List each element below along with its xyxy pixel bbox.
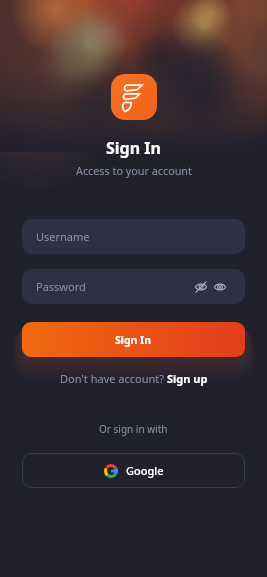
button[interactable]: Hide password (195, 281, 207, 293)
staticText: Password (36, 279, 86, 294)
staticText: Don't have account? (60, 371, 167, 386)
staticText: Sign In (106, 137, 161, 159)
button[interactable]: Password (22, 269, 245, 304)
staticText: Sign In (115, 333, 152, 347)
button[interactable]: Google (22, 453, 245, 488)
staticText: Sign up (167, 371, 208, 386)
button[interactable]: Show password (214, 281, 226, 293)
button[interactable]: Username (22, 219, 245, 254)
staticText: Or sign in with (99, 422, 168, 436)
staticText: Google (126, 463, 164, 478)
staticText: Access to your account (76, 163, 192, 178)
button[interactable]: Don't have account? (60, 371, 208, 386)
button[interactable]: Sign In (22, 322, 245, 357)
staticText: Username (36, 229, 90, 244)
